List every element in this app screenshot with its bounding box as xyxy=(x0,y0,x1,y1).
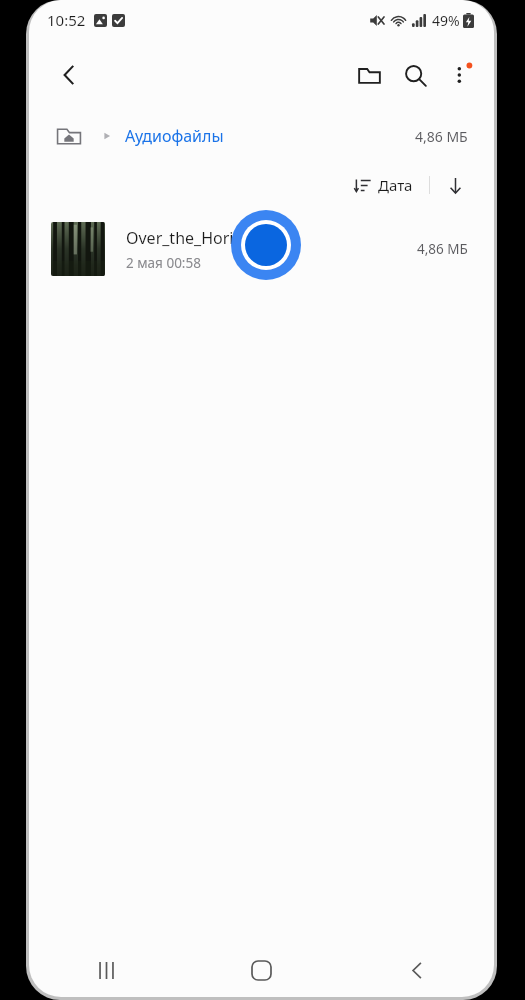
staticText: 2 мая 00:58 xyxy=(126,254,201,272)
staticText: Дата xyxy=(378,175,413,195)
button[interactable]: Аудиофайлы xyxy=(125,125,224,147)
button[interactable]: Дата xyxy=(348,171,419,199)
staticText: 49% xyxy=(432,11,460,30)
staticText: Over_the_Horizon.mp3 xyxy=(126,227,299,249)
staticText: 4,86 МБ xyxy=(415,127,468,146)
staticText: 10:52 xyxy=(47,10,86,30)
button[interactable]: Back xyxy=(339,943,494,997)
staticText: 4,86 МБ xyxy=(417,240,468,258)
button[interactable]: New folder xyxy=(346,52,392,98)
button[interactable]: Back xyxy=(45,51,93,99)
button[interactable]: Over_the_Horizon.mp3 xyxy=(29,208,494,290)
button[interactable]: Home folder xyxy=(53,120,85,152)
staticText: Аудиофайлы xyxy=(125,125,224,147)
button[interactable]: More options xyxy=(438,52,484,98)
button[interactable]: Recents xyxy=(29,943,184,997)
button[interactable]: Sort direction xyxy=(440,170,470,200)
button[interactable]: Search xyxy=(392,52,438,98)
button[interactable]: Home xyxy=(184,943,339,997)
